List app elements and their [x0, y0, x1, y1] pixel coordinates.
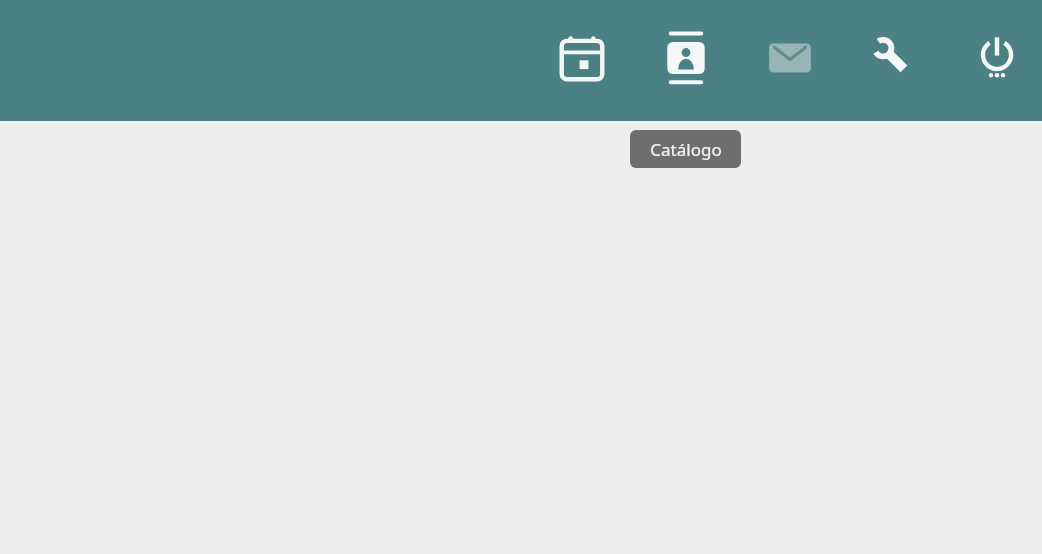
button[interactable]: Contactos [654, 26, 718, 90]
button[interactable]: Herramientas [861, 26, 925, 90]
button[interactable]: Correo [758, 26, 822, 90]
button[interactable]: Salir [965, 26, 1029, 90]
button[interactable]: Catálogo [550, 26, 614, 90]
staticText: Catálogo [650, 138, 722, 161]
